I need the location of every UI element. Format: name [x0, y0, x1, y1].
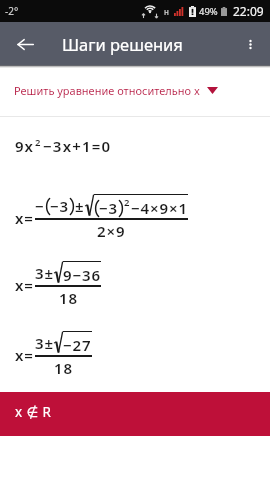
staticText: 9x — [15, 136, 34, 156]
staticText: Решить уравнение относительно x — [14, 83, 200, 98]
staticText: −4×9×1 — [131, 198, 188, 218]
staticText: −3 — [99, 198, 119, 218]
staticText: 22:09 — [233, 3, 264, 19]
staticText: −27 — [63, 335, 92, 355]
staticText: -2° — [5, 4, 19, 18]
staticText: x ∉ R — [15, 403, 52, 421]
staticText: 2 — [35, 136, 42, 149]
staticText: x= — [15, 208, 34, 228]
staticText: Шаги решения — [62, 33, 183, 55]
staticText: 49% — [199, 5, 218, 18]
staticText: н — [164, 6, 169, 17]
staticText: 9−36 — [63, 265, 101, 285]
staticText: 2×9 — [97, 221, 126, 241]
staticText: x= — [15, 275, 34, 295]
button[interactable]: Решить уравнение относительно x — [0, 68, 270, 113]
staticText: − — [35, 196, 45, 216]
staticText: 3± — [35, 333, 54, 353]
staticText: x= — [15, 345, 34, 365]
button[interactable]: More options — [233, 27, 267, 61]
staticText: 3± — [35, 263, 54, 283]
staticText: −3x+1=0 — [43, 136, 112, 156]
staticText: 18 — [59, 288, 78, 308]
staticText: 18 — [54, 358, 73, 378]
button[interactable]: x ∉ R — [0, 392, 270, 436]
staticText: 2 — [124, 196, 131, 209]
staticText: −3 — [50, 196, 70, 216]
staticText: ± — [75, 196, 85, 216]
button[interactable]: Back — [8, 27, 42, 61]
